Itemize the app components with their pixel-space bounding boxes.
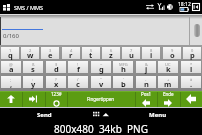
staticText: 3 [49,48,52,53]
staticText: " [100,77,102,82]
staticText: z [109,50,113,60]
button[interactable]: Shift [0,91,22,107]
staticText: 4 [70,48,73,53]
staticText: ! [77,62,79,67]
staticText: s [31,64,35,74]
staticText: n [144,79,149,89]
staticText: h [121,64,126,74]
staticText: g [99,64,104,74]
button[interactable]: 2 [21,47,39,59]
staticText: k [166,64,171,74]
staticText: + [167,77,170,82]
button[interactable]: 0 [183,47,201,59]
button[interactable]: : [23,76,43,88]
staticText: ? [55,77,57,82]
staticText: Send [37,111,52,119]
button[interactable]: ; [1,76,21,88]
staticText: 1 [9,48,12,53]
staticText: i [150,50,153,60]
staticText: , [10,79,13,89]
staticText: - [145,77,147,82]
staticText: 0 [191,48,194,53]
staticText: & [145,62,148,67]
staticText: u [129,50,134,60]
button[interactable]: * [181,61,201,73]
staticText: t [89,50,93,60]
button[interactable]: ä [181,76,201,88]
staticText: v [99,79,104,89]
button[interactable]: ß [23,61,43,73]
staticText: p [190,50,195,60]
staticText: o [170,50,175,60]
staticText: 8 [150,48,153,53]
staticText: w [27,50,34,60]
button[interactable]: 4 [62,47,80,59]
staticText: 2 [29,48,32,53]
staticText: 800x480 34kb PNG [54,122,148,135]
button[interactable]: Backspace [180,91,202,107]
staticText: ß [32,62,35,67]
staticText: c [76,79,80,89]
staticText: x [54,79,59,89]
button[interactable]: Home [135,91,157,107]
button[interactable]: 6 [102,47,120,59]
button[interactable]: Keyboard [88,108,114,119]
button[interactable]: 9 [163,47,181,59]
button[interactable]: 7 [122,47,140,59]
staticText: 123# [51,91,62,97]
button[interactable]: End [157,91,179,107]
button[interactable]: Menu [118,110,198,120]
button[interactable]: 1 [1,47,19,59]
staticText: UC [165,62,171,67]
button[interactable]: - [136,76,156,88]
button[interactable]: $ [46,61,66,73]
staticText: l [190,64,193,74]
staticText: 5 [90,48,93,53]
staticText: Ende [163,91,174,97]
button[interactable]: 8 [142,47,160,59]
staticText: r [69,50,73,60]
staticText: 0/160 [3,32,19,40]
staticText: 6 [110,48,113,53]
button[interactable]: & [136,61,156,73]
button[interactable]: Close [192,3,200,11]
button[interactable]: Tab [22,91,44,107]
staticText: : [32,77,34,82]
staticText: 18:12 [178,1,191,8]
button[interactable]: " [91,76,111,88]
staticText: ~ [100,62,103,67]
staticText: Pos1 [141,91,152,97]
staticText: $ [55,62,58,67]
staticText: SMS / MMS [14,4,43,11]
staticText: q [8,50,13,60]
staticText: MFG [119,62,128,67]
staticText: y [31,79,36,89]
staticText: ; [10,77,12,82]
button[interactable]: Send [4,110,84,120]
button[interactable]: Symbols [45,91,67,107]
staticText: e [48,50,53,60]
button[interactable]: MFG [113,61,133,73]
button[interactable]: ? [46,76,66,88]
button[interactable]: ! [68,61,88,73]
staticText: a [9,64,14,74]
staticText: m [164,79,172,89]
staticText: ä [190,77,193,82]
staticText: Fingertippen [87,96,115,102]
button[interactable]: @ [1,61,21,73]
staticText: @ [9,62,13,67]
button[interactable]: 3 [41,47,59,59]
button[interactable]: ' [113,76,133,88]
button[interactable]: + [158,76,178,88]
staticText: . [190,79,193,89]
button[interactable]: UC [158,61,178,73]
staticText: Menu [149,111,167,119]
staticText: f [77,64,80,74]
button[interactable]: 5 [82,47,100,59]
button[interactable]: / [68,76,88,88]
staticText: 7 [130,48,133,53]
button[interactable]: ~ [91,61,111,73]
staticText: b [121,79,126,89]
button[interactable]: Fingertippen [67,91,134,107]
staticText: ' [123,77,124,82]
